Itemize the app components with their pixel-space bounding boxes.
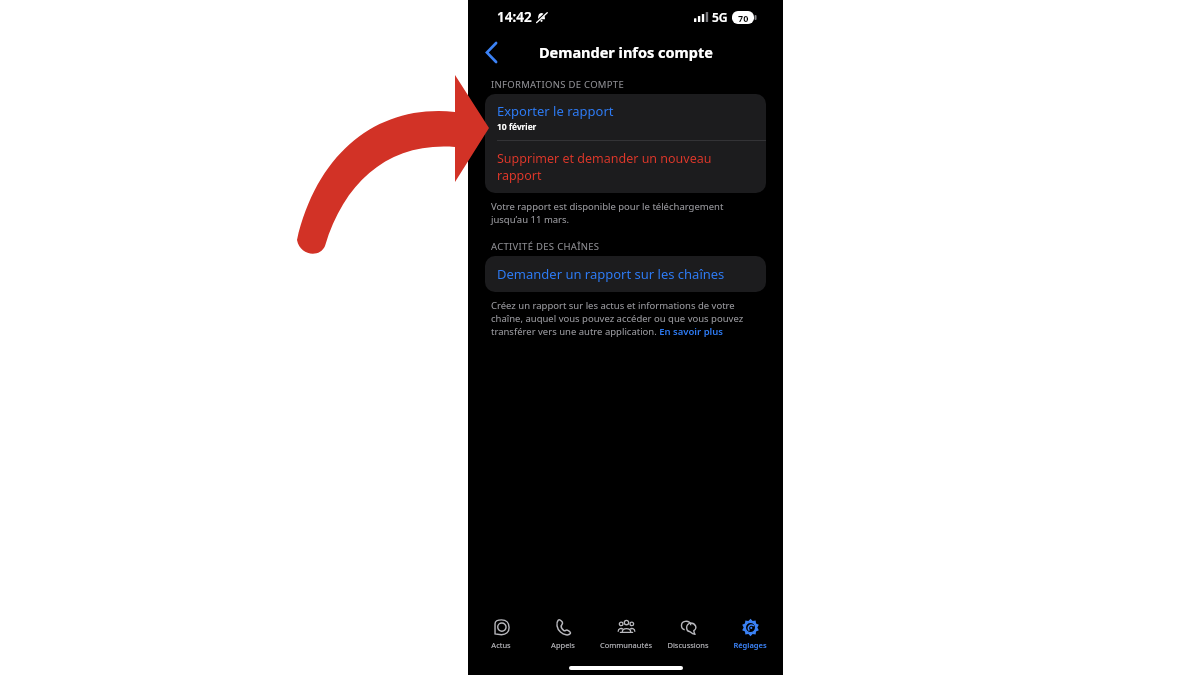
button[interactable]: Discussions bbox=[659, 614, 717, 654]
button[interactable]: Retour bbox=[474, 35, 508, 69]
staticText: Votre rapport est disponible pour le tél… bbox=[491, 200, 757, 226]
staticText: ACTIVITÉ DES CHAÎNES bbox=[491, 240, 600, 253]
staticText: 70 bbox=[738, 12, 749, 24]
staticText: Actus bbox=[491, 640, 511, 650]
button[interactable]: Exporter le rapport bbox=[485, 94, 766, 140]
staticText: 10 février bbox=[497, 121, 537, 133]
staticText: Discussions bbox=[667, 640, 709, 650]
button[interactable]: Réglages bbox=[721, 614, 779, 654]
staticText: Réglages bbox=[733, 640, 767, 650]
staticText: Demander un rapport sur les chaînes bbox=[497, 265, 725, 283]
button[interactable]: Appels bbox=[534, 614, 592, 654]
staticText: Demander infos compte bbox=[539, 42, 713, 62]
staticText: 14:42 bbox=[497, 8, 532, 26]
staticText: Exporter le rapport bbox=[497, 102, 614, 120]
staticText: Supprimer et demander un nouveau rapport bbox=[497, 150, 754, 184]
staticText: Appels bbox=[551, 640, 575, 650]
button[interactable]: Communautés bbox=[597, 614, 655, 654]
button[interactable]: Actus bbox=[472, 614, 530, 654]
button[interactable]: Demander un rapport sur les chaînes bbox=[485, 256, 766, 292]
staticText: Communautés bbox=[600, 640, 652, 650]
button[interactable]: Supprimer et demander un nouveau rapport bbox=[485, 141, 766, 193]
staticText: INFORMATIONS DE COMPTE bbox=[491, 78, 624, 91]
staticText: Créez un rapport sur les actus et inform… bbox=[491, 299, 761, 338]
staticText: 5G bbox=[712, 9, 728, 25]
